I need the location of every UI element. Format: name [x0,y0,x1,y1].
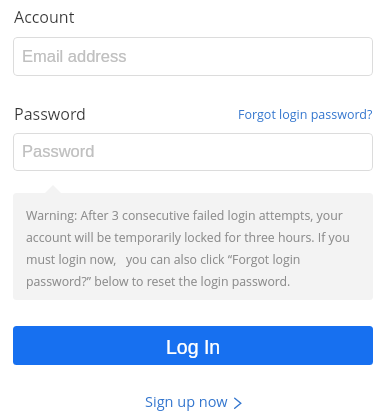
button[interactable]: Sign up now [145,392,242,412]
staticText: Log In [166,336,221,358]
button[interactable]: Password [13,133,373,171]
button[interactable]: Email address [13,37,373,76]
staticText: Password [14,103,86,125]
staticText: Warning: After 3 consecutive failed logi… [26,207,363,290]
button[interactable]: Log In [13,326,373,365]
staticText: Sign up now [145,392,228,412]
staticText: Account [14,6,75,28]
staticText: Forgot login password? [238,106,373,123]
staticText: Email address [22,47,127,65]
staticText: Password [22,142,95,160]
button[interactable]: Forgot login password? [238,106,386,123]
